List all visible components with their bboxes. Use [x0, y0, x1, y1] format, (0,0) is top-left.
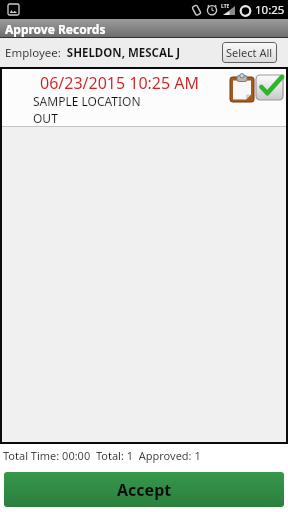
staticText: Approve Records [5, 21, 106, 37]
staticText: Accept [117, 479, 172, 501]
button[interactable]: 06/23/2015 10:25 AM [2, 69, 286, 127]
button[interactable]: Accept [4, 472, 284, 507]
button[interactable] [256, 74, 283, 100]
staticText: 10:25 [255, 2, 285, 18]
staticText: Select All [226, 45, 273, 60]
staticText: Employee: SHELDON, MESCAL J [5, 45, 181, 61]
staticText: SAMPLE LOCATION [33, 93, 141, 109]
staticText: 06/23/2015 10:25 AM [40, 72, 200, 94]
staticText: LTE [221, 3, 230, 10]
button[interactable]: Select All [222, 42, 277, 63]
staticText: OUT [33, 110, 58, 126]
staticText: Total Time: 00:00 Total: 1 Approved: 1 [3, 448, 201, 463]
